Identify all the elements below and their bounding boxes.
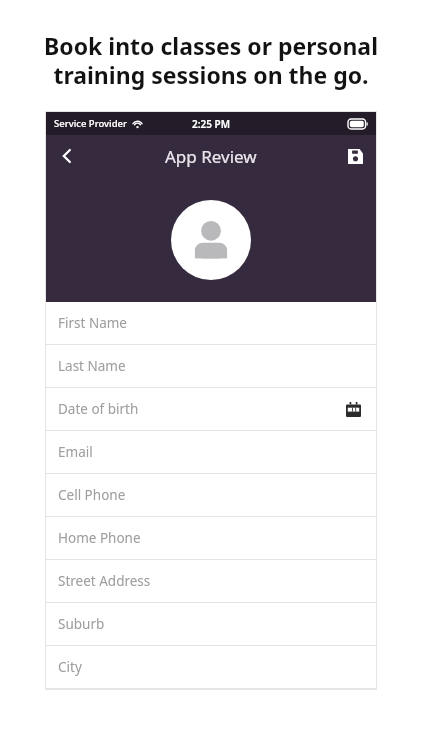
staticText: 2:25 PM — [192, 117, 230, 131]
staticText: Suburb — [58, 615, 105, 633]
staticText: App Review — [165, 145, 257, 168]
button[interactable]: Pick date — [342, 398, 364, 420]
button[interactable]: Street Address — [46, 560, 376, 603]
button[interactable]: Cell Phone — [46, 474, 376, 517]
button[interactable]: Last Name — [46, 345, 376, 388]
button[interactable]: Home Phone — [46, 517, 376, 560]
button[interactable]: City — [46, 646, 376, 689]
staticText: First Name — [58, 314, 127, 332]
button[interactable]: Suburb — [46, 603, 376, 646]
button[interactable]: Profile photo — [171, 200, 251, 280]
staticText: Email — [58, 443, 93, 461]
staticText: Home Phone — [58, 529, 141, 547]
staticText: Last Name — [58, 357, 126, 375]
button[interactable]: Back — [46, 135, 88, 177]
staticText: City — [58, 658, 82, 676]
button[interactable]: Save — [334, 135, 376, 177]
button[interactable]: First Name — [46, 302, 376, 345]
button[interactable]: Email — [46, 431, 376, 474]
button[interactable]: Date of birth — [46, 388, 376, 431]
staticText: Book into classes or personal training s… — [24, 30, 398, 91]
staticText: Cell Phone — [58, 486, 126, 504]
staticText: Street Address — [58, 572, 151, 590]
staticText: Service Provider — [54, 117, 128, 130]
staticText: Date of birth — [58, 400, 139, 418]
